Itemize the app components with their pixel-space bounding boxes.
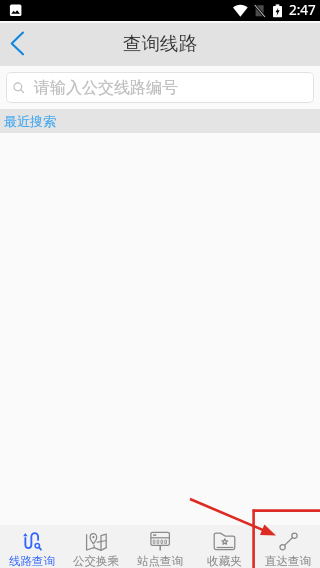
staticText: 查询线路 <box>123 32 197 55</box>
staticText: 公交换乘 <box>73 554 119 568</box>
button[interactable]: 收藏夹 <box>192 525 256 568</box>
staticText: 直达查询 <box>265 554 311 568</box>
button[interactable]: Back <box>0 21 40 66</box>
staticText: 最近搜索 <box>4 113 56 129</box>
button[interactable]: 站点查询 <box>128 525 192 568</box>
button[interactable]: 线路查询 <box>0 525 64 568</box>
staticText: 站点查询 <box>137 554 183 568</box>
staticText: 请输入公交线路编号 <box>34 78 178 98</box>
button[interactable]: 公交换乘 <box>64 525 128 568</box>
staticText: 线路查询 <box>9 554 55 568</box>
button[interactable]: 直达查询 <box>256 525 320 568</box>
staticText: 2:47 <box>289 1 316 19</box>
button[interactable]: 请输入公交线路编号 <box>6 72 314 103</box>
staticText: 收藏夹 <box>207 554 242 568</box>
